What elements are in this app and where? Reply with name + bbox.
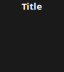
staticText: Title (21, 0, 42, 12)
